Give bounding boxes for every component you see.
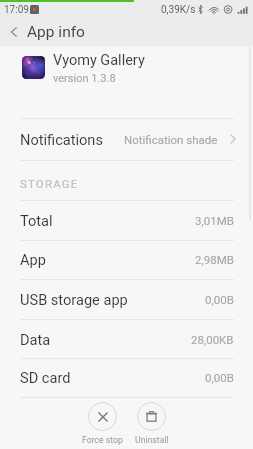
staticText: Data [20, 331, 51, 348]
button[interactable]: Uninstall [129, 402, 174, 445]
staticText: STORAGE [20, 177, 79, 190]
staticText: Total [20, 212, 53, 229]
staticText: 0,00B [205, 293, 234, 306]
staticText: version 1.3.8 [53, 72, 116, 85]
staticText: 3,01MB [195, 214, 234, 227]
button[interactable]: Back [0, 18, 27, 46]
button[interactable]: Data [0, 319, 253, 359]
staticText: Notifications [20, 131, 103, 148]
button[interactable]: App [0, 240, 253, 279]
staticText: 0,39K/s [161, 4, 196, 16]
staticText: SD card [20, 369, 71, 386]
button[interactable]: Total [0, 200, 253, 240]
staticText: 2,98MB [195, 253, 234, 266]
staticText: 0,00B [205, 371, 234, 384]
staticText: Force stop [82, 435, 123, 445]
staticText: 28,00KB [191, 333, 234, 346]
button[interactable]: SD card [0, 358, 253, 397]
staticText: USB storage app [20, 291, 128, 308]
button[interactable]: Force stop [80, 402, 125, 445]
staticText: Uninstall [135, 435, 169, 445]
staticText: 17:09 [4, 4, 29, 16]
button[interactable]: USB storage app [0, 279, 253, 319]
staticText: Notification shade [124, 133, 218, 146]
staticText: Vyomy Gallery [53, 52, 145, 69]
button[interactable]: Notifications [0, 118, 253, 160]
staticText: App info [27, 23, 85, 41]
button[interactable]: Vyomy Gallery [0, 46, 253, 118]
staticText: App [20, 251, 46, 268]
